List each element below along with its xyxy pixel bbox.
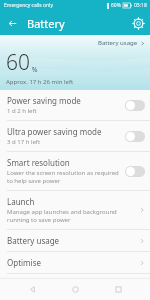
button[interactable]: Battery usage	[96, 38, 147, 48]
button[interactable]: Settings	[126, 11, 150, 35]
staticText: Battery usage	[98, 39, 138, 47]
staticText: Power saving mode	[7, 95, 81, 106]
staticText: Smart resolution	[7, 157, 70, 168]
staticText: Ultra power saving mode	[7, 126, 102, 137]
button[interactable]: Launch	[0, 191, 150, 229]
button[interactable]: Back	[0, 11, 24, 35]
button[interactable]: Optimise	[0, 252, 150, 273]
button[interactable]: Recents	[107, 278, 129, 300]
staticText: 3 d 17 h left	[7, 138, 41, 146]
button[interactable]: Battery usage	[0, 230, 150, 251]
button[interactable]: Toggle	[125, 166, 145, 177]
button[interactable]: Home	[64, 278, 86, 300]
staticText: Emergency calls only	[4, 2, 53, 9]
staticText: 60%	[111, 2, 121, 9]
button[interactable]: Power saving mode	[0, 90, 150, 120]
staticText: %	[30, 65, 38, 75]
staticText: Battery usage	[7, 235, 60, 246]
staticText: 05:18	[134, 2, 147, 9]
button[interactable]: Back	[21, 278, 43, 300]
button[interactable]: Ultra power saving mode	[0, 121, 150, 151]
staticText: Battery	[27, 16, 65, 31]
staticText: Approx. 17 h 26 min left	[6, 78, 74, 86]
button[interactable]: Toggle	[125, 131, 145, 142]
staticText: 60	[6, 48, 30, 77]
staticText: Manage app launches and background runni…	[7, 208, 139, 224]
staticText: Optimise	[7, 257, 42, 268]
button[interactable]: Toggle	[125, 100, 145, 111]
staticText: Launch	[7, 196, 35, 207]
button[interactable]: Smart resolution	[0, 152, 150, 190]
staticText: 1 d 2 h left	[7, 107, 37, 115]
staticText: Lower the screen resolution as required …	[7, 169, 121, 185]
